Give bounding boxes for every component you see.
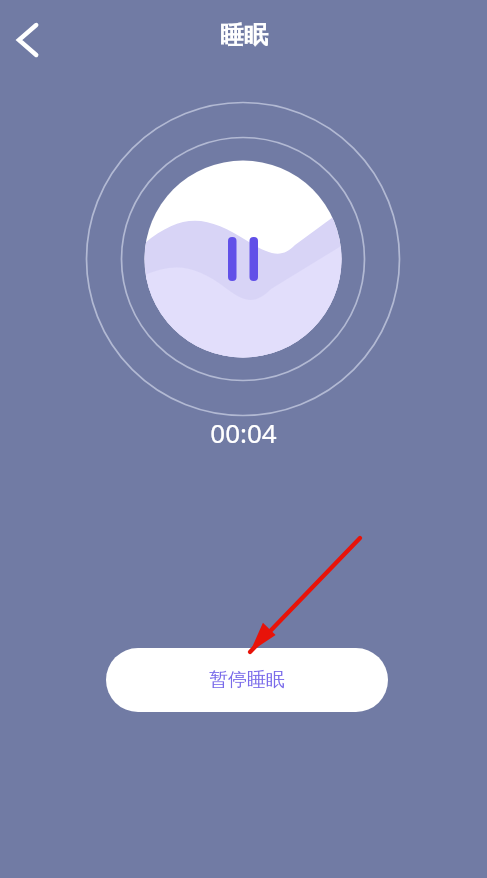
staticText: 暂停睡眠 xyxy=(209,668,285,692)
staticText: 睡眠 xyxy=(220,20,268,50)
button[interactable]: 暂停睡眠 xyxy=(106,648,388,712)
button[interactable]: Back xyxy=(0,8,58,72)
staticText: 00:04 xyxy=(210,415,277,450)
